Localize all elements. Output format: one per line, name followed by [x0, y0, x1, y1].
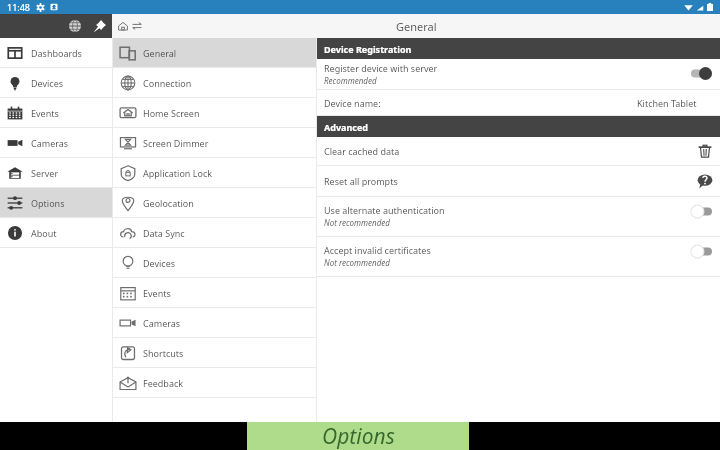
- button[interactable]: Feedback: [112, 368, 316, 398]
- staticText: 11:48: [7, 1, 31, 13]
- staticText: Devices: [31, 77, 64, 89]
- button[interactable]: Options: [0, 188, 112, 218]
- button[interactable]: Cameras: [112, 308, 316, 338]
- staticText: General: [396, 19, 437, 34]
- button[interactable]: Devices: [112, 248, 316, 278]
- staticText: Data Sync: [143, 227, 185, 239]
- button[interactable]: Geolocation: [112, 188, 316, 218]
- staticText: Cameras: [143, 317, 181, 329]
- button[interactable]: Home Screen: [112, 98, 316, 128]
- staticText: General: [143, 47, 177, 59]
- button[interactable]: Dashboards: [0, 38, 112, 68]
- button[interactable]: Screen Dimmer: [112, 128, 316, 158]
- button[interactable]: Events: [112, 278, 316, 308]
- staticText: Cameras: [31, 137, 69, 149]
- staticText: Dashboards: [31, 47, 82, 59]
- staticText: Devices: [143, 257, 176, 269]
- staticText: Feedback: [143, 377, 184, 389]
- staticText: Events: [31, 107, 59, 119]
- staticText: Options: [322, 422, 395, 450]
- button[interactable]: Connection: [112, 68, 316, 98]
- staticText: Application Lock: [143, 167, 213, 179]
- staticText: Reset all prompts: [324, 175, 398, 187]
- staticText: About: [31, 227, 57, 239]
- button[interactable]: Clear cached data: [317, 137, 720, 166]
- button[interactable]: Devices: [0, 68, 112, 98]
- staticText: Register device with server: [324, 62, 438, 74]
- button[interactable]: Use alternate authentication: [317, 197, 720, 237]
- staticText: Options: [31, 197, 65, 209]
- button[interactable]: Pin: [88, 15, 110, 37]
- staticText: Screen Dimmer: [143, 137, 209, 149]
- staticText: Home Screen: [143, 107, 200, 119]
- staticText: Server: [31, 167, 59, 179]
- staticText: Recommended: [324, 75, 377, 86]
- button[interactable]: Server: [0, 158, 112, 188]
- staticText: Not recommended: [324, 217, 390, 228]
- staticText: Use alternate authentication: [324, 204, 445, 216]
- staticText: Shortcuts: [143, 347, 184, 359]
- staticText: Clear cached data: [324, 145, 400, 157]
- staticText: Advanced: [324, 121, 369, 133]
- button[interactable]: Device name:: [317, 90, 720, 116]
- button[interactable]: Shortcuts: [112, 338, 316, 368]
- staticText: Connection: [143, 77, 192, 89]
- button[interactable]: Language: [64, 15, 86, 37]
- button[interactable]: Home: [113, 16, 133, 36]
- staticText: Accept invalid certificates: [324, 244, 431, 256]
- button[interactable]: Data Sync: [112, 218, 316, 248]
- button[interactable]: Reset all prompts: [317, 166, 720, 197]
- staticText: Events: [143, 287, 171, 299]
- staticText: Device Registration: [324, 43, 412, 55]
- button[interactable]: Events: [0, 98, 112, 128]
- button[interactable]: Application Lock: [112, 158, 316, 188]
- button[interactable]: Accept invalid certificates: [317, 237, 720, 277]
- button[interactable]: Register device with server: [317, 59, 720, 90]
- button[interactable]: Switch server: [127, 16, 147, 36]
- staticText: Not recommended: [324, 257, 390, 268]
- button[interactable]: General: [112, 38, 316, 68]
- button[interactable]: Cameras: [0, 128, 112, 158]
- staticText: Geolocation: [143, 197, 194, 209]
- staticText: Kitchen Tablet: [637, 97, 697, 109]
- button[interactable]: About: [0, 218, 112, 248]
- staticText: Device name:: [324, 97, 381, 109]
